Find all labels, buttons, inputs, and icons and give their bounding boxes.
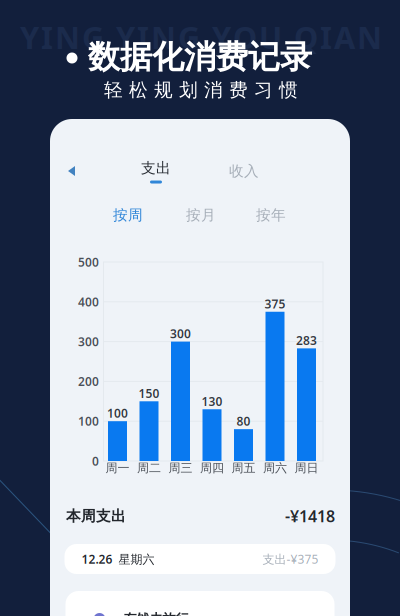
button[interactable]: 按年 [252,204,290,226]
button[interactable]: 收入 [224,153,264,189]
staticText: 收入 [229,162,259,180]
staticText: 按年 [256,206,286,224]
staticText: 80 [236,413,250,429]
staticText: 周二 [137,461,161,475]
staticText: 轻 松 规 划 消 费 习 惯 [104,78,298,101]
staticText: 周五 [231,461,255,475]
button[interactable]: 按月 [182,204,220,226]
staticText: 400 [78,294,99,310]
staticText: 周三 [168,461,192,475]
staticText: 500 [78,254,99,270]
button[interactable]: 按周 [109,204,147,226]
staticText: 周日 [294,461,318,475]
staticText: 283 [296,332,317,348]
button[interactable]: 存钱去旅行 [65,591,334,616]
button[interactable]: 12.26 星期六 [64,544,335,574]
staticText: 周一 [105,461,129,475]
button[interactable]: 返回 [57,160,87,186]
staticText: 支出-¥375 [262,551,318,567]
staticText: 100 [107,405,128,421]
staticText: 存钱去旅行 [123,611,188,616]
staticText: 按周 [113,206,143,224]
staticText: 375 [264,296,285,312]
staticText: 0 [92,453,99,469]
staticText: 300 [78,334,99,349]
staticText: 130 [201,393,222,409]
staticText: 12.26 星期六 [81,551,154,567]
staticText: -¥1418 [285,505,335,527]
staticText: 100 [78,413,99,429]
staticText: YING YING YOU QIAN [20,17,382,57]
staticText: 200 [78,373,99,389]
staticText: 数据化消费记录 [88,37,312,77]
staticText: 按月 [186,206,216,224]
button[interactable]: 支出 [136,156,176,192]
staticText: 周六 [263,461,287,475]
staticText: 150 [138,385,159,401]
staticText: 周四 [200,461,224,475]
staticText: 支出 [141,159,171,177]
staticText: 300 [170,326,191,341]
staticText: 本周支出 [66,507,126,525]
